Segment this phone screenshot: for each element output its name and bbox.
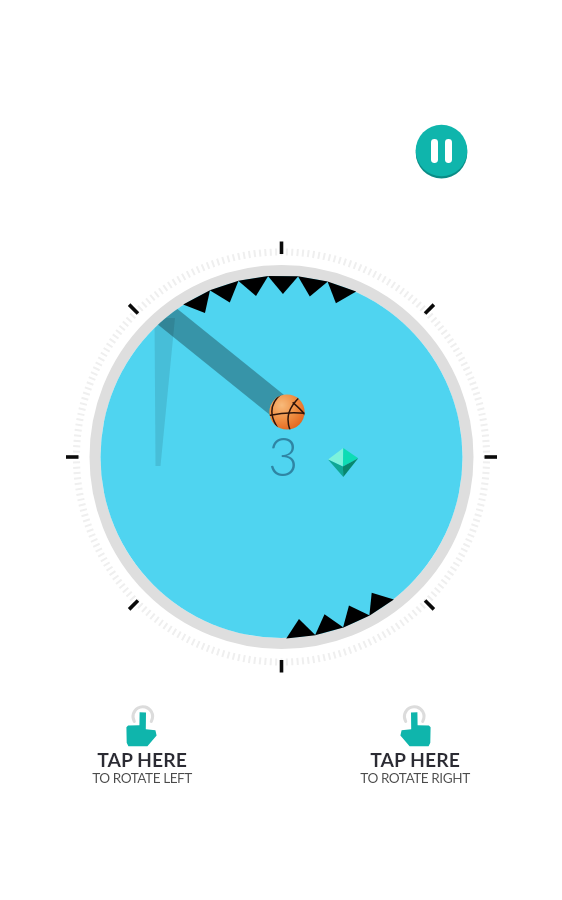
staticText: TO ROTATE LEFT: [92, 770, 192, 786]
staticText: 3: [268, 424, 299, 487]
staticText: TAP HERE: [370, 748, 460, 771]
other: Rotate left: [123, 700, 161, 746]
button[interactable]: Rotate right: [314, 700, 515, 785]
staticText: TAP HERE: [97, 748, 187, 771]
staticText: TO ROTATE RIGHT: [360, 770, 470, 786]
button[interactable]: Rotate left: [41, 700, 242, 785]
button[interactable]: Pause: [415, 124, 468, 177]
other: Rotate right: [396, 700, 434, 746]
